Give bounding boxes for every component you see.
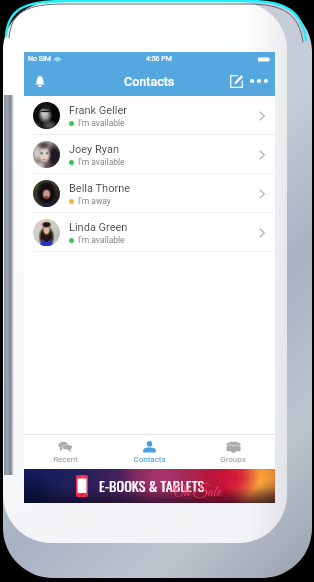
- staticText: On Sale: [173, 482, 221, 502]
- staticText: Contacts: [124, 74, 175, 89]
- button[interactable]: Joey Ryan: [24, 135, 275, 174]
- staticText: I'm away: [78, 196, 111, 206]
- staticText: I'm available: [78, 157, 125, 167]
- staticText: 4:56 PM: [146, 55, 172, 63]
- staticText: No SIM: [28, 55, 51, 63]
- staticText: E-BOOKS & TABLETS: [99, 475, 205, 496]
- staticText: Bella Thorne: [69, 182, 131, 195]
- button[interactable]: E-Books and tablets on sale advertisemen…: [24, 469, 275, 503]
- staticText: Frank Geller: [69, 104, 128, 117]
- button[interactable]: More options: [246, 71, 272, 91]
- button[interactable]: Recent: [24, 435, 107, 469]
- button[interactable]: Notifications: [29, 70, 51, 92]
- staticText: Linda Green: [69, 221, 128, 234]
- staticText: Contacts: [133, 455, 166, 464]
- button[interactable]: Frank Geller: [24, 96, 275, 135]
- staticText: Joey Ryan: [69, 143, 119, 156]
- staticText: Groups: [220, 455, 246, 464]
- staticText: I'm available: [78, 235, 125, 245]
- button[interactable]: Contacts: [107, 435, 191, 469]
- staticText: I'm available: [78, 118, 125, 128]
- button[interactable]: Groups: [191, 435, 275, 469]
- button[interactable]: Compose new message: [226, 71, 246, 91]
- button[interactable]: Bella Thorne: [24, 174, 275, 213]
- staticText: Recent: [53, 455, 78, 464]
- button[interactable]: Linda Green: [24, 213, 275, 252]
